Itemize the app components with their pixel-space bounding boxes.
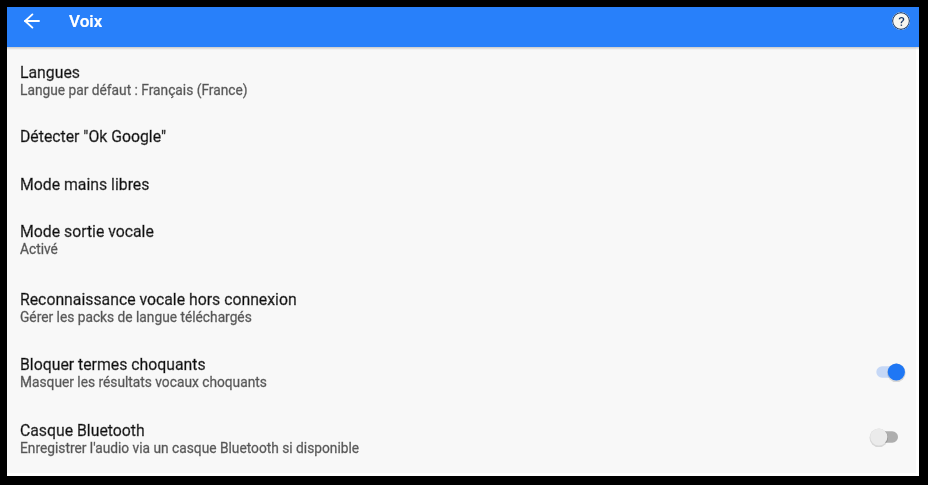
button[interactable]: Casque Bluetooth — [7, 405, 916, 473]
button[interactable]: Mode mains libres — [7, 159, 916, 206]
staticText: Activé — [20, 241, 58, 257]
staticText: Mode mains libres — [20, 175, 150, 194]
staticText: Langues — [20, 63, 80, 82]
staticText: ? — [898, 13, 905, 29]
button[interactable]: Aide — [882, 7, 919, 34]
staticText: Enregistrer l'audio via un casque Blueto… — [20, 440, 360, 456]
button[interactable]: Langues — [7, 47, 916, 111]
staticText: Gérer les packs de langue téléchargés — [20, 309, 252, 325]
staticText: Mode sortie vocale — [20, 222, 154, 241]
staticText: Langue par défaut : Français (France) — [20, 82, 248, 98]
button[interactable]: Désactiver — [873, 422, 916, 452]
staticText: Voix — [69, 11, 103, 31]
button[interactable]: Retour — [16, 7, 47, 34]
button[interactable]: Reconnaissance vocale hors connexion — [7, 274, 916, 339]
staticText: Détecter "Ok Google" — [20, 127, 167, 146]
button[interactable]: Activer — [873, 357, 916, 387]
staticText: Casque Bluetooth — [20, 421, 145, 440]
staticText: Masquer les résultats vocaux choquants — [20, 374, 267, 390]
staticText: Bloquer termes choquants — [20, 355, 206, 374]
button[interactable]: Bloquer termes choquants — [7, 339, 916, 405]
button[interactable]: Détecter "Ok Google" — [7, 111, 916, 159]
button[interactable]: Mode sortie vocale — [7, 206, 916, 274]
staticText: Reconnaissance vocale hors connexion — [20, 290, 297, 309]
